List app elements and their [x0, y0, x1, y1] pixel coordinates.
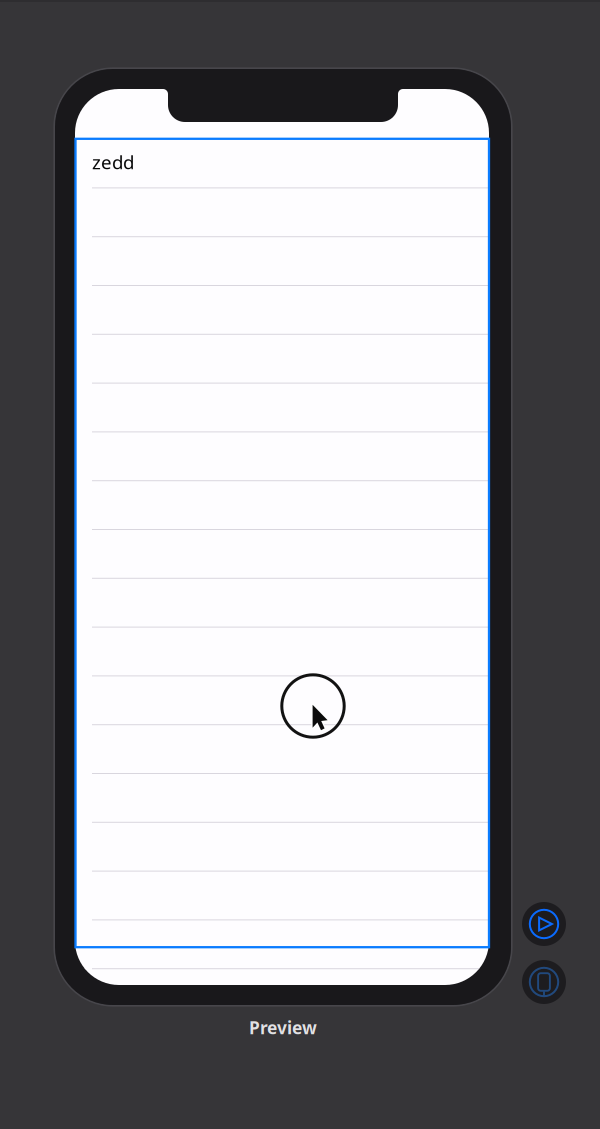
button[interactable]: Preview on Device — [522, 960, 566, 1004]
staticText: Preview — [249, 1016, 317, 1039]
staticText: zedd — [92, 150, 134, 174]
button[interactable]: Live Preview — [522, 902, 566, 946]
